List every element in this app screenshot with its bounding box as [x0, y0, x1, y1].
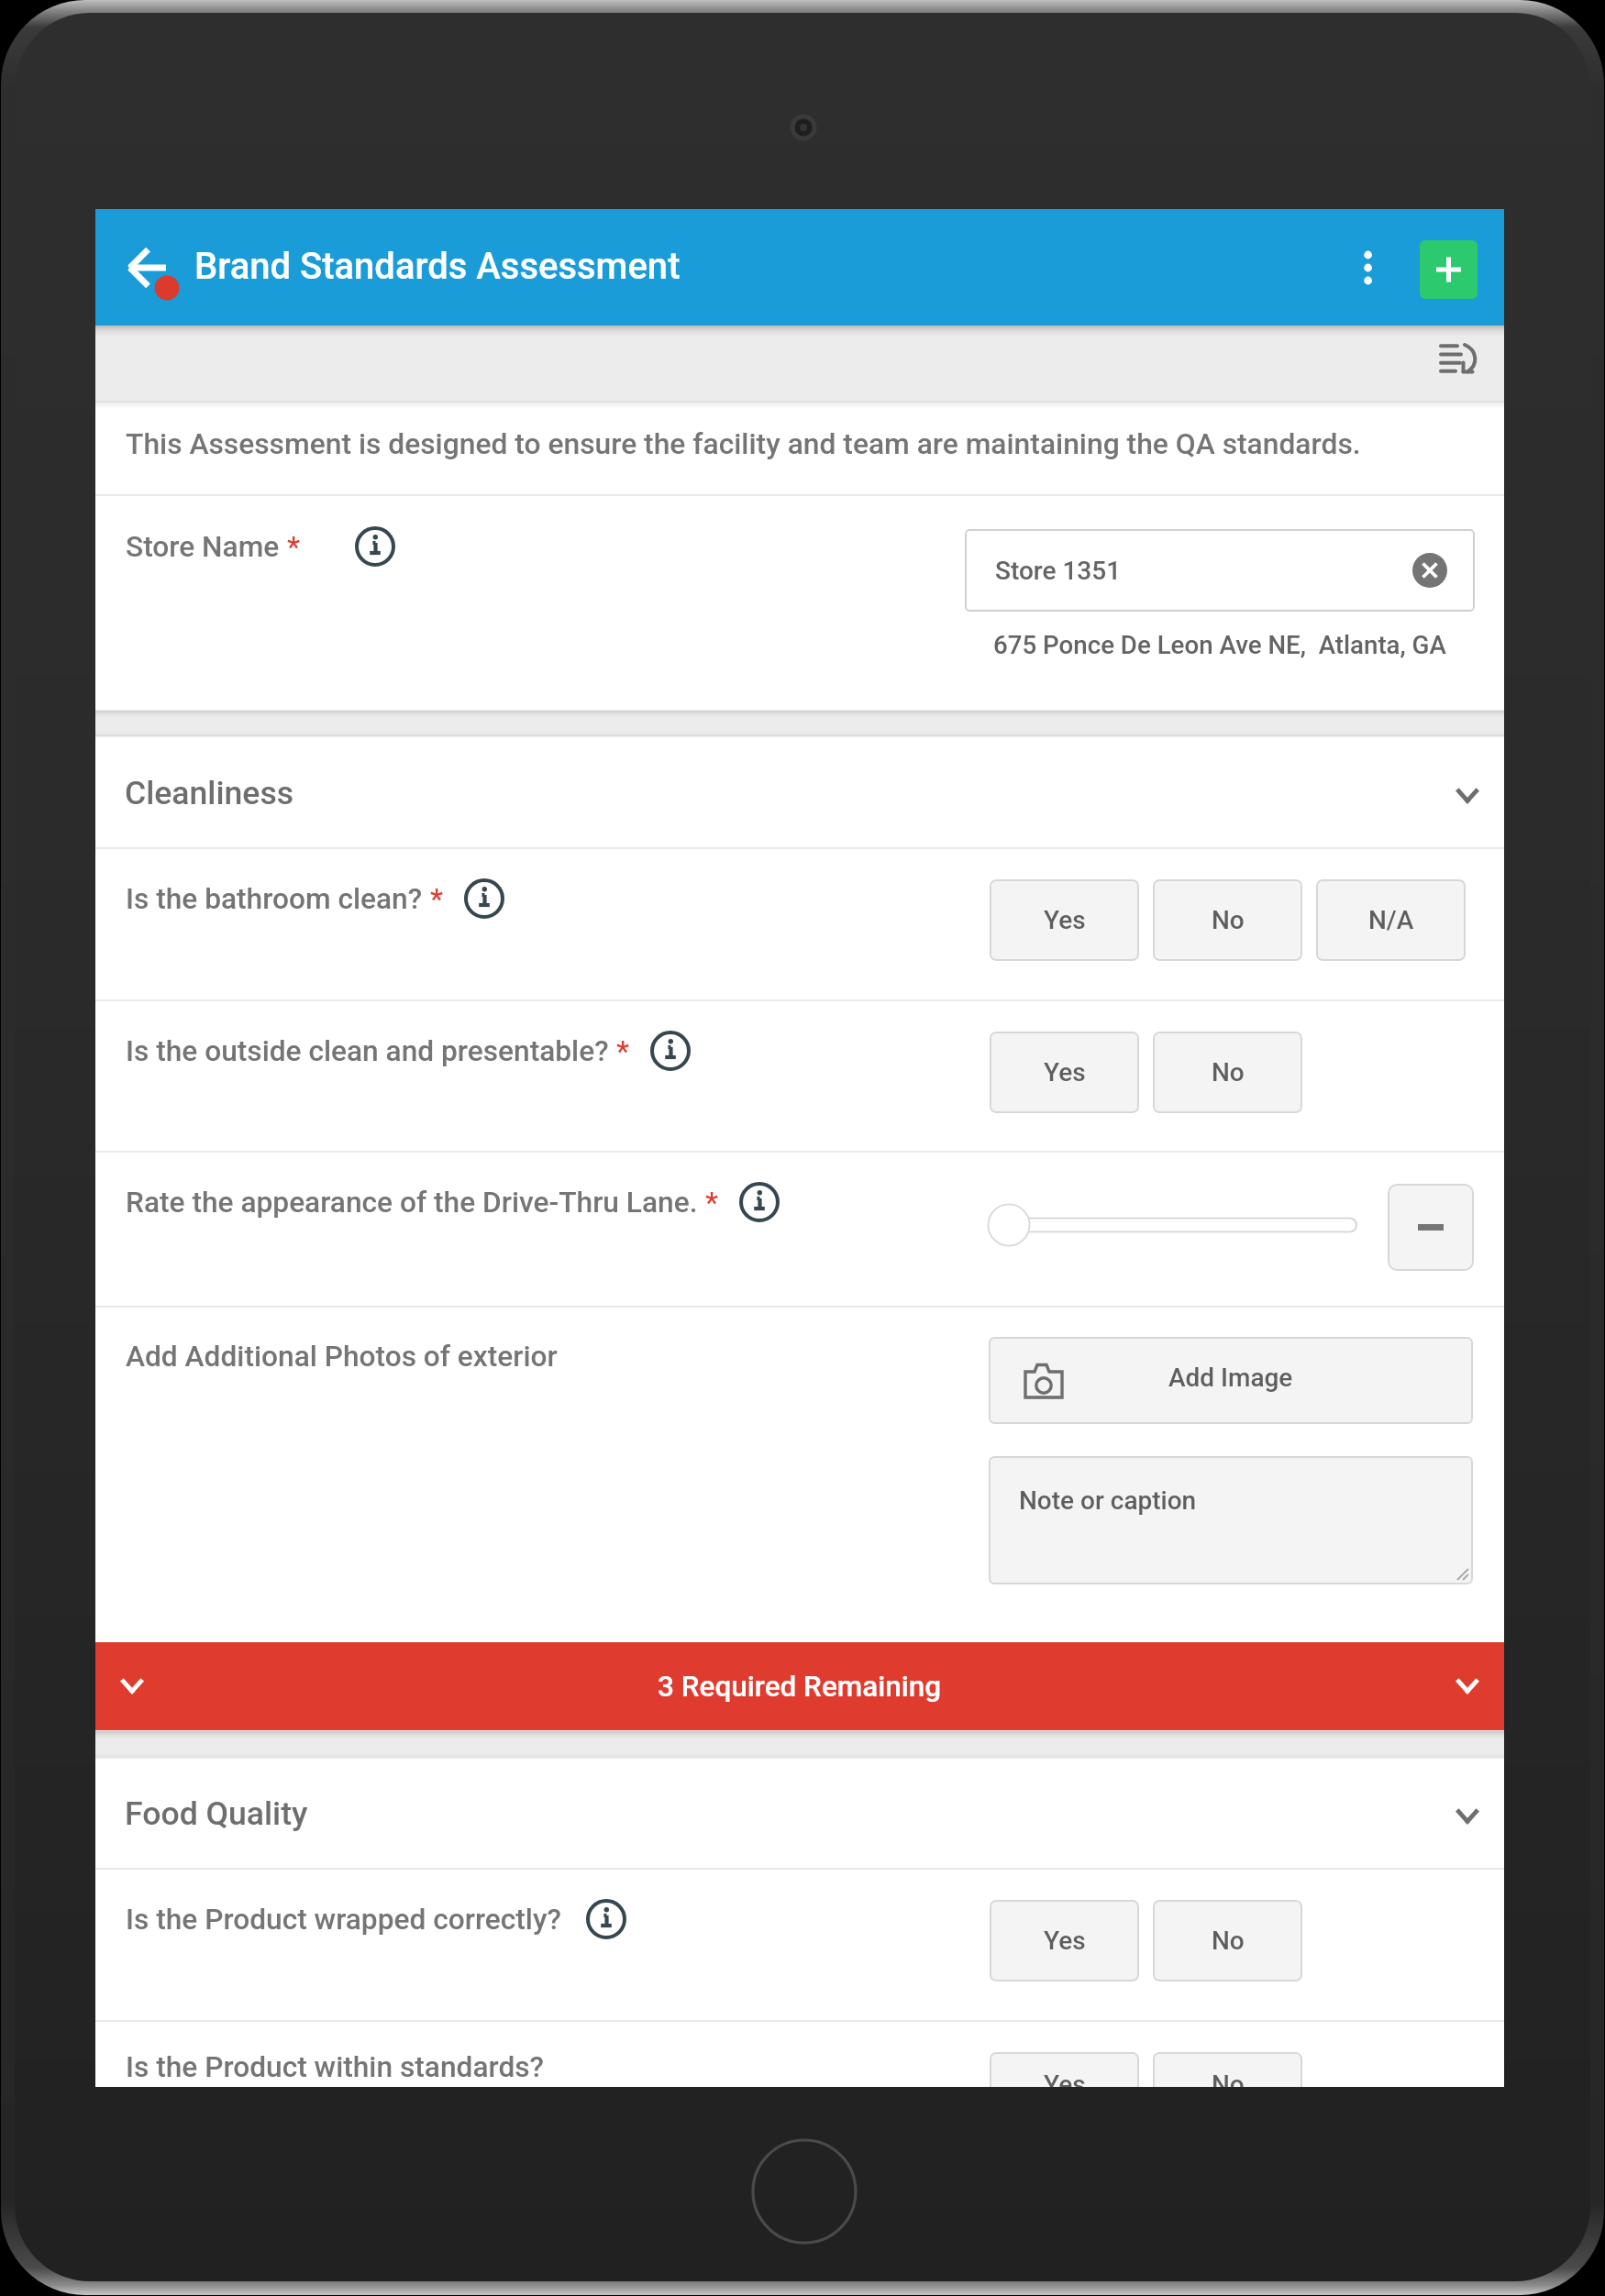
button[interactable]: Expand	[95, 1642, 1504, 1730]
staticText: 675 Ponce De Leon Ave NE, Atlanta, GA	[993, 630, 1446, 659]
button[interactable]: Collapse section	[1446, 1795, 1489, 1838]
staticText: No	[1212, 905, 1245, 935]
staticText: Add Additional Photos of exterior	[126, 1340, 558, 1374]
other: Expand	[1446, 1665, 1489, 1707]
button[interactable]: Back	[114, 227, 194, 308]
button[interactable]: Yes	[990, 879, 1139, 961]
button[interactable]: Yes	[990, 2052, 1139, 2087]
button[interactable]: Add Image	[989, 1337, 1473, 1424]
button[interactable]: Yes	[990, 1032, 1139, 1113]
staticText: Is the outside clean and presentable?	[126, 1034, 609, 1068]
button[interactable]: No	[1153, 1900, 1302, 1981]
staticText: Cleanliness	[125, 774, 294, 812]
staticText: Yes	[1044, 1926, 1086, 1956]
staticText: No	[1212, 1926, 1245, 1956]
staticText: *	[423, 882, 443, 916]
button[interactable]: Collapse section	[1446, 775, 1489, 817]
staticText: Yes	[1044, 905, 1086, 935]
button[interactable]: No	[1153, 2052, 1302, 2087]
button[interactable]: Clear	[1412, 553, 1447, 588]
button[interactable]: No	[1153, 1032, 1302, 1113]
staticText: No	[1212, 2070, 1245, 2087]
button[interactable]: Decrease rating	[1388, 1184, 1474, 1271]
button[interactable]: Rating slider	[983, 1193, 1405, 1257]
button[interactable]: Yes	[990, 1900, 1139, 1981]
staticText: 3 Required Remaining	[658, 1670, 942, 1704]
staticText: Brand Standards Assessment	[194, 245, 681, 288]
staticText: Store 1351	[995, 556, 1122, 586]
button[interactable]: Store 1351	[965, 529, 1475, 612]
staticText: *	[698, 1186, 718, 1220]
button[interactable]: No	[1153, 879, 1302, 961]
other: Expand	[111, 1665, 153, 1707]
button[interactable]: Note or caption	[989, 1456, 1473, 1584]
staticText: Note or caption	[1019, 1485, 1197, 1516]
staticText: No	[1212, 1057, 1245, 1087]
button[interactable]: Cleanliness	[95, 737, 1504, 847]
staticText: This Assessment is designed to ensure th…	[126, 426, 1361, 460]
staticText: Is the bathroom clean?	[126, 882, 423, 916]
staticText: Store Name	[126, 530, 280, 564]
button[interactable]: More options	[1335, 235, 1401, 301]
staticText: Food Quality	[125, 1794, 308, 1833]
staticText: Is the Product within standards?	[126, 2050, 544, 2084]
button[interactable]: Food Quality	[95, 1758, 1504, 1868]
staticText: *	[609, 1034, 629, 1068]
staticText: Rate the appearance of the Drive-Thru La…	[126, 1186, 698, 1220]
button[interactable]: N/A	[1316, 879, 1466, 961]
staticText: Add Image	[1168, 1363, 1293, 1393]
staticText: Is the Product wrapped correctly?	[126, 1903, 561, 1937]
staticText: *	[280, 530, 300, 564]
button[interactable]: Reorder questions	[1430, 337, 1485, 392]
button[interactable]: Add	[1420, 240, 1478, 299]
staticText: N/A	[1368, 905, 1414, 935]
staticText: Yes	[1044, 2070, 1086, 2087]
staticText: Yes	[1044, 1057, 1086, 1087]
